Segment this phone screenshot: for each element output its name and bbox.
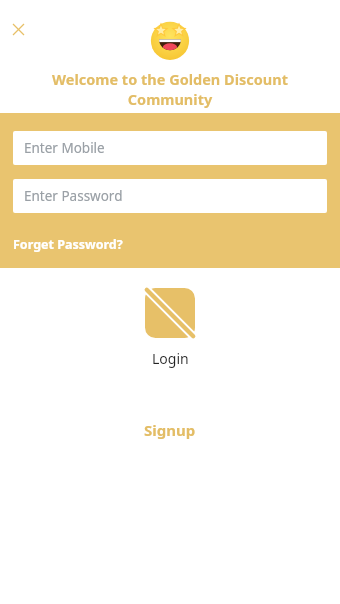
staticText: Welcome to the Golden Discount Community: [44, 69, 296, 110]
button[interactable]: Enter Mobile: [13, 131, 327, 165]
other: Login: [145, 288, 195, 338]
staticText: Signup: [144, 420, 196, 440]
staticText: Login: [152, 349, 189, 368]
button[interactable]: Forget Password?: [13, 234, 123, 255]
button[interactable]: Signup: [132, 415, 208, 445]
staticText: Forget Password?: [13, 236, 123, 253]
button[interactable]: Close: [5, 16, 31, 42]
button[interactable]: Enter Password: [13, 179, 327, 213]
button[interactable]: Login: [129, 286, 211, 370]
staticText: Enter Password: [24, 187, 123, 205]
staticText: Enter Mobile: [24, 139, 105, 157]
